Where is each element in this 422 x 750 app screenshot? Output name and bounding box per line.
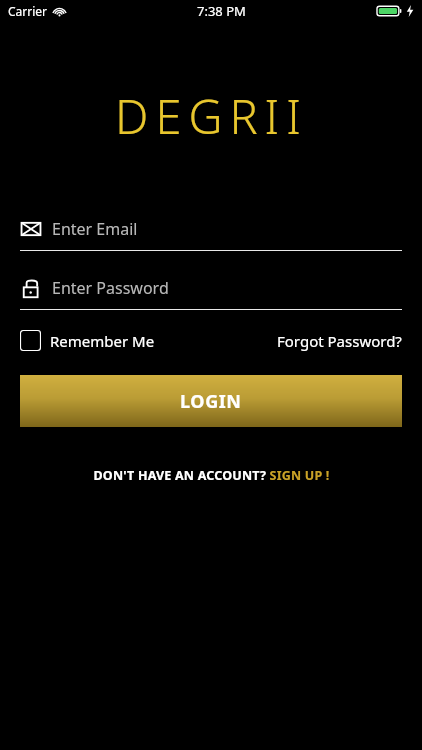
staticText: Enter Email [52,218,138,240]
button[interactable]: DON'T HAVE AN ACCOUNT? SIGN UP ! [0,463,422,488]
button[interactable]: Forgot Password? [277,325,402,357]
other: Email [20,218,42,240]
button[interactable]: Remember Me [20,324,155,357]
staticText: DEGRII [115,84,308,148]
staticText: Forgot Password? [277,331,402,351]
other: Password [20,277,42,299]
staticText: DON'T HAVE AN ACCOUNT? SIGN UP ! [93,467,330,484]
staticText: Carrier [8,3,48,19]
staticText: Remember Me [50,331,155,351]
button[interactable]: Password [20,273,402,310]
button[interactable]: Email [20,214,402,251]
staticText: LOGIN [180,389,242,414]
staticText: 7:38 PM [197,2,246,20]
staticText: Enter Password [52,277,169,299]
button[interactable]: LOGIN [20,375,402,427]
